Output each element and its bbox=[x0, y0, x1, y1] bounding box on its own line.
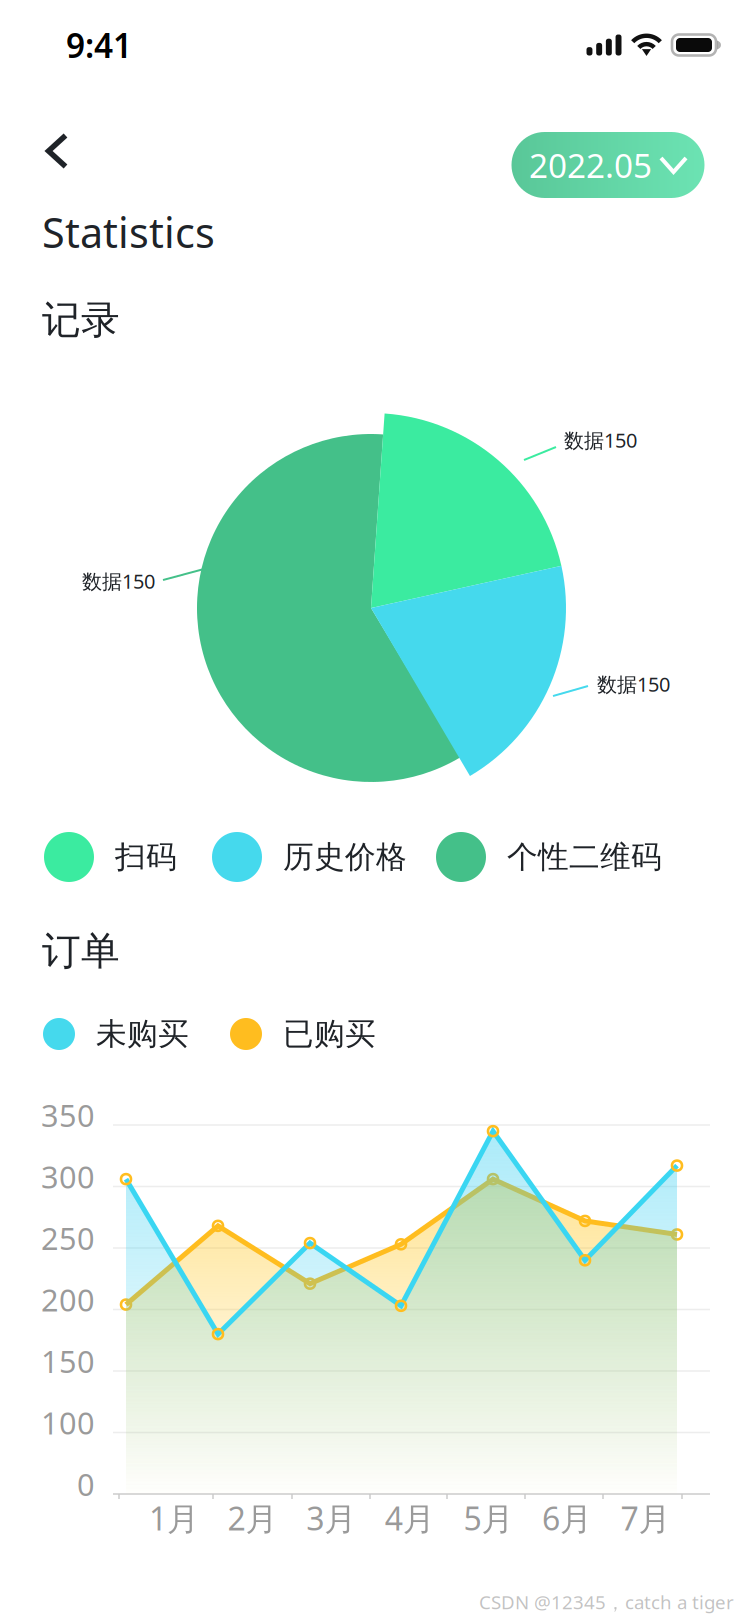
staticText: 7月 bbox=[621, 1497, 671, 1539]
staticText: 个性二维码 bbox=[507, 838, 662, 876]
staticText: 订单 bbox=[42, 927, 120, 975]
staticText: CSDN @12345，catch a tiger bbox=[479, 1590, 734, 1614]
staticText: 9:41 bbox=[66, 23, 132, 67]
staticText: 4月 bbox=[385, 1497, 435, 1539]
staticText: 300 bbox=[41, 1156, 95, 1197]
staticText: 5月 bbox=[463, 1497, 513, 1539]
staticText: 3月 bbox=[306, 1497, 356, 1539]
staticText: 100 bbox=[41, 1402, 95, 1443]
staticText: 200 bbox=[41, 1279, 95, 1320]
button[interactable]: 2022.05 bbox=[511, 132, 704, 198]
staticText: 数据150 bbox=[564, 427, 637, 453]
staticText: 未购买 bbox=[96, 1015, 189, 1053]
staticText: 250 bbox=[41, 1218, 95, 1258]
button[interactable]: Back bbox=[18, 109, 95, 192]
staticText: 2022.05 bbox=[529, 143, 652, 187]
staticText: 数据150 bbox=[82, 568, 155, 594]
staticText: 6月 bbox=[542, 1497, 592, 1539]
staticText: 150 bbox=[41, 1341, 95, 1381]
staticText: Statistics bbox=[42, 205, 215, 259]
staticText: 0 bbox=[77, 1464, 95, 1504]
staticText: 记录 bbox=[42, 296, 120, 344]
staticText: 已购买 bbox=[283, 1015, 376, 1053]
staticText: 历史价格 bbox=[283, 838, 407, 876]
staticText: 2月 bbox=[228, 1497, 278, 1539]
staticText: 1月 bbox=[149, 1497, 199, 1539]
staticText: 数据150 bbox=[597, 671, 670, 697]
staticText: 350 bbox=[41, 1095, 95, 1135]
staticText: 扫码 bbox=[115, 838, 177, 876]
